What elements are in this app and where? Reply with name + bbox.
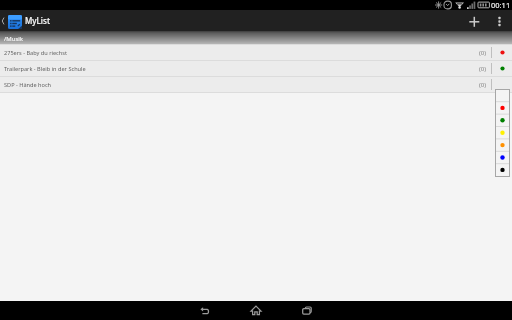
staticText: MyList <box>25 15 50 26</box>
staticText: 275ers - Baby du riechst <box>4 49 67 57</box>
button[interactable]: Add item <box>461 10 480 31</box>
button[interactable]: Recent apps <box>298 301 316 320</box>
staticText: Trailerpark - Bleib in der Schule <box>4 65 86 73</box>
staticText: 00:11 <box>491 0 511 10</box>
button[interactable]: Trailerpark - Bleib in der Schule <box>0 61 512 76</box>
staticText: SDP - Hände hoch <box>4 81 52 89</box>
button[interactable]: SDP - Hände hoch <box>0 77 512 92</box>
button[interactable]: Colour option <box>495 166 510 177</box>
button[interactable]: Colour option <box>495 114 510 127</box>
button[interactable]: Colour option <box>495 127 510 140</box>
button[interactable]: Colour option <box>495 140 510 153</box>
button[interactable]: 275ers - Baby du riechst <box>0 45 512 60</box>
staticText: (0) <box>479 81 487 89</box>
staticText: (0) <box>479 65 487 73</box>
button[interactable]: Back <box>196 301 214 320</box>
button[interactable]: Colour option <box>495 153 510 166</box>
button[interactable]: More options <box>493 10 506 31</box>
staticText: /Musik <box>4 35 24 43</box>
button[interactable]: Colour option <box>495 101 510 114</box>
staticText: (0) <box>479 49 487 57</box>
button[interactable]: Navigate up <box>0 10 8 31</box>
button[interactable]: Home <box>247 301 265 320</box>
